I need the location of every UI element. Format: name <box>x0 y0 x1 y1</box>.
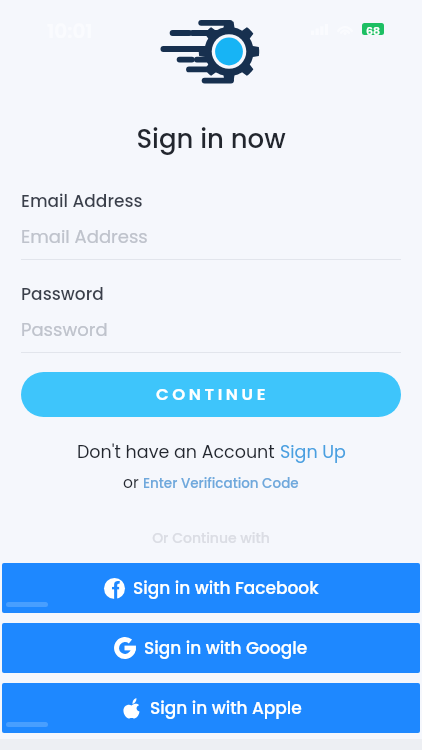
button[interactable]: Sign Up <box>280 440 346 465</box>
button[interactable]: CONTINUE <box>21 372 401 417</box>
staticText: 68 <box>366 23 381 35</box>
button[interactable]: Sign in with Apple <box>2 683 420 733</box>
staticText: Password <box>21 282 104 306</box>
staticText: Sign Up <box>280 440 346 465</box>
button[interactable]: Enter Verification Code <box>143 474 299 493</box>
staticText: Sign in with Facebook <box>133 576 319 600</box>
staticText: Email Address <box>21 224 148 249</box>
button[interactable]: Sign in with Facebook <box>2 563 420 613</box>
button[interactable]: Sign in with Google <box>2 623 420 673</box>
staticText: Sign in now <box>0 121 422 157</box>
staticText: Email Address <box>21 189 143 213</box>
staticText: Don't have an Account <box>77 440 280 465</box>
staticText: or <box>123 472 143 494</box>
staticText: Enter Verification Code <box>143 474 299 493</box>
staticText: CONTINUE <box>156 383 270 406</box>
staticText: Or Continue with <box>0 528 422 548</box>
staticText: Password <box>21 317 108 342</box>
staticText: Sign in with Apple <box>150 696 302 720</box>
staticText: Sign in with Google <box>144 636 308 660</box>
